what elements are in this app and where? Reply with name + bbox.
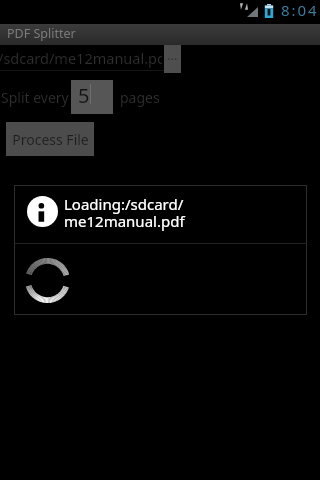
staticText: ... <box>167 46 178 64</box>
staticText: PDF Splitter <box>7 25 76 42</box>
staticText: 5 <box>78 82 90 109</box>
staticText: Split every <box>1 88 69 107</box>
other: Battery <box>264 4 274 18</box>
staticText: pages <box>120 88 160 107</box>
other: Signal strength <box>247 7 258 17</box>
staticText: Loading:/sdcard/ me12manual.pdf <box>64 194 185 232</box>
other: Mobile data <box>240 3 248 10</box>
staticText: 8:04 <box>281 0 319 20</box>
staticText: Process File <box>12 130 89 149</box>
staticText: /sdcard/me12manual.pdf <box>0 48 162 68</box>
button[interactable]: 5 <box>71 80 113 114</box>
button[interactable]: /sdcard/me12manual.pdf <box>0 45 164 73</box>
button[interactable]: Process File <box>6 122 94 156</box>
